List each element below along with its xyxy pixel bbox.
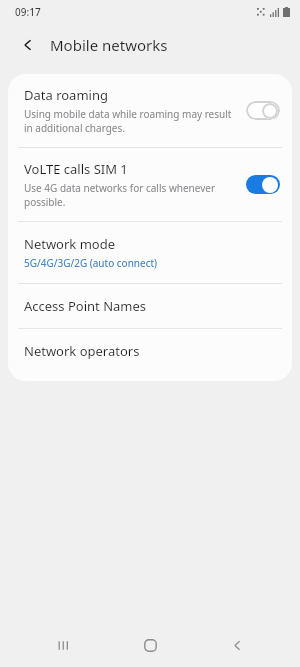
- staticText: Data roaming: [24, 86, 108, 104]
- button[interactable]: Network operators: [8, 329, 292, 373]
- staticText: Mobile networks: [50, 35, 168, 55]
- staticText: Use 4G data networks for calls whenever …: [24, 181, 238, 209]
- button[interactable]: Network mode: [8, 222, 292, 283]
- button[interactable]: Off: [246, 101, 280, 120]
- staticText: 5G/4G/3G/2G (auto connect): [24, 256, 158, 270]
- staticText: 09:17: [15, 5, 41, 19]
- staticText: Network operators: [24, 342, 140, 360]
- staticText: Using mobile data while roaming may resu…: [24, 107, 238, 135]
- button[interactable]: Home: [126, 623, 174, 667]
- button[interactable]: VoLTE calls SIM 1: [8, 148, 292, 221]
- button[interactable]: Data roaming: [8, 74, 292, 147]
- staticText: VoLTE calls SIM 1: [24, 160, 128, 178]
- staticText: Network mode: [24, 235, 116, 253]
- button[interactable]: Recents: [39, 623, 87, 667]
- button[interactable]: Access Point Names: [8, 284, 292, 328]
- button[interactable]: Back: [14, 31, 42, 59]
- button[interactable]: On: [246, 175, 280, 194]
- button[interactable]: Back: [213, 623, 261, 667]
- staticText: Access Point Names: [24, 297, 147, 315]
